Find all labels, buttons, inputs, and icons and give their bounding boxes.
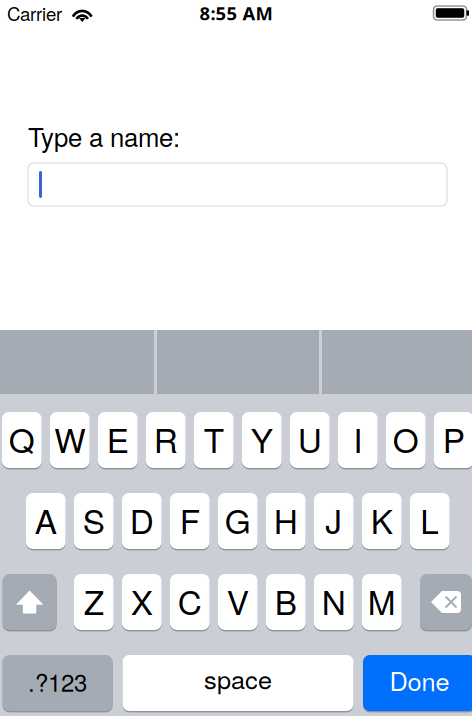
button[interactable]: E xyxy=(98,410,138,469)
button[interactable]: S xyxy=(74,491,114,550)
staticText: O xyxy=(393,415,419,462)
staticText: A xyxy=(35,496,57,543)
staticText: F xyxy=(180,496,200,543)
button[interactable]: F xyxy=(170,491,210,550)
button[interactable]: A xyxy=(26,491,66,550)
button[interactable]: R xyxy=(146,410,186,469)
staticText: N xyxy=(322,577,346,624)
staticText: D xyxy=(130,496,154,543)
button[interactable]: L xyxy=(410,491,450,550)
button[interactable]: Z xyxy=(74,572,114,631)
button[interactable]: Y xyxy=(242,410,282,469)
button[interactable]: I xyxy=(338,410,378,469)
button[interactable]: B xyxy=(266,572,306,631)
staticText: Carrier xyxy=(7,0,62,26)
staticText: R xyxy=(154,415,178,462)
button[interactable]: H xyxy=(266,491,306,550)
staticText: P xyxy=(443,415,465,462)
button[interactable]: Delete xyxy=(420,572,472,631)
button[interactable]: D xyxy=(122,491,162,550)
button[interactable]: Name text field xyxy=(28,163,447,206)
staticText: Y xyxy=(251,415,273,462)
staticText: K xyxy=(371,496,393,543)
button[interactable]: space xyxy=(122,653,353,712)
staticText: Q xyxy=(9,415,35,462)
staticText: H xyxy=(274,496,298,543)
staticText: U xyxy=(298,415,322,462)
staticText: S xyxy=(83,496,105,543)
staticText: C xyxy=(178,577,202,624)
staticText: 8:55 AM xyxy=(199,0,272,26)
button[interactable]: X xyxy=(122,572,162,631)
button[interactable]: G xyxy=(218,491,258,550)
staticText: G xyxy=(225,496,251,543)
staticText: M xyxy=(368,577,396,624)
button[interactable]: Done xyxy=(363,653,472,712)
staticText: L xyxy=(420,496,439,543)
button[interactable]: T xyxy=(194,410,234,469)
button[interactable]: W xyxy=(50,410,90,469)
button[interactable]: Shift xyxy=(3,572,57,631)
button[interactable]: V xyxy=(218,572,258,631)
staticText: B xyxy=(275,577,297,624)
button[interactable]: P xyxy=(434,410,472,469)
staticText: I xyxy=(353,415,362,462)
button[interactable]: N xyxy=(314,572,354,631)
staticText: W xyxy=(54,415,85,462)
staticText: Done xyxy=(389,662,449,698)
button[interactable]: J xyxy=(314,491,354,550)
staticText: T xyxy=(204,415,224,462)
staticText: Type a name: xyxy=(28,118,180,154)
button[interactable]: K xyxy=(362,491,402,550)
button[interactable]: Q xyxy=(2,410,42,469)
staticText: Z xyxy=(84,577,104,624)
button[interactable]: U xyxy=(290,410,330,469)
staticText: space xyxy=(204,660,272,697)
staticText: J xyxy=(325,496,342,543)
staticText: E xyxy=(107,415,129,462)
staticText: V xyxy=(227,577,249,624)
button[interactable]: C xyxy=(170,572,210,631)
button[interactable]: O xyxy=(386,410,426,469)
staticText: X xyxy=(131,577,153,624)
button[interactable]: M xyxy=(362,572,402,631)
staticText: .?123 xyxy=(28,664,87,699)
button[interactable]: .?123 xyxy=(3,653,113,712)
